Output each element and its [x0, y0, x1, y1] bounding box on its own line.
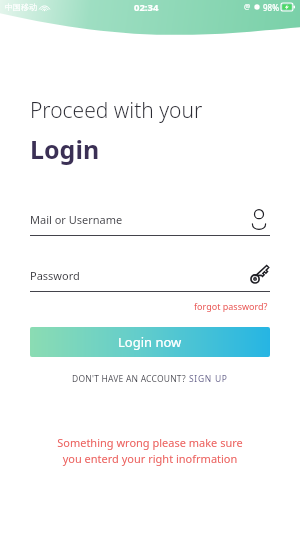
staticText: Password — [30, 268, 248, 283]
staticText: Login now — [118, 333, 182, 351]
staticText: 02:34 — [134, 1, 159, 14]
button[interactable]: Login now — [30, 327, 270, 357]
staticText: DON'T HAVE AN ACCOUNT? — [72, 373, 189, 385]
staticText: @ — [244, 2, 251, 12]
staticText: Login — [30, 132, 100, 166]
staticText: 98% — [263, 2, 279, 13]
button[interactable]: Mail or Username — [30, 208, 270, 230]
button[interactable]: SIGN UP — [189, 373, 228, 385]
staticText: Mail or Username — [30, 212, 248, 227]
staticText: Proceed with your — [30, 96, 203, 125]
other: Username — [248, 208, 270, 230]
other: Password — [248, 264, 270, 286]
button[interactable]: Password — [30, 264, 270, 286]
button[interactable]: forgot password? — [192, 298, 270, 314]
staticText: Something wrong please make sure you ent… — [30, 435, 270, 466]
staticText: 中国移动 — [5, 2, 37, 12]
